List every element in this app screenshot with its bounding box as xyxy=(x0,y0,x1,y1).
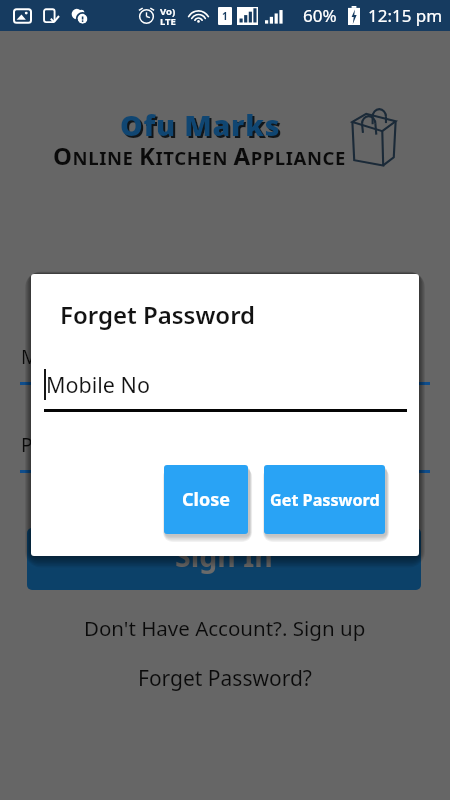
staticText: Sign In xyxy=(175,537,273,576)
staticText: Forget Password? xyxy=(138,664,312,693)
staticText: Get Password xyxy=(270,489,380,511)
staticText: Mobile No xyxy=(21,344,113,370)
other: Shopping bag logo xyxy=(351,108,397,166)
staticText: 1 xyxy=(222,9,228,23)
staticText: Mobile No xyxy=(46,370,150,399)
staticText: Ofu Marks xyxy=(122,108,283,147)
button[interactable]: Get Password xyxy=(264,465,385,534)
staticText: Close xyxy=(182,487,230,512)
staticText: Password xyxy=(21,432,107,458)
button[interactable]: Forget Password? xyxy=(0,660,450,696)
staticText: 60% xyxy=(303,4,337,27)
staticText: Forget Password xyxy=(60,298,256,331)
staticText: Vo) LTE xyxy=(160,5,176,28)
button[interactable]: Don't Have Account?. Sign up xyxy=(0,610,450,646)
button[interactable]: Close xyxy=(164,465,248,534)
button[interactable]: Sign In xyxy=(27,528,421,590)
staticText: Don't Have Account?. Sign up xyxy=(84,614,366,642)
staticText: ONLINE KITCHEN APPLIANCE xyxy=(53,139,347,172)
staticText: 12:15 pm xyxy=(368,4,443,27)
staticText: Ofu Marks xyxy=(120,106,281,145)
